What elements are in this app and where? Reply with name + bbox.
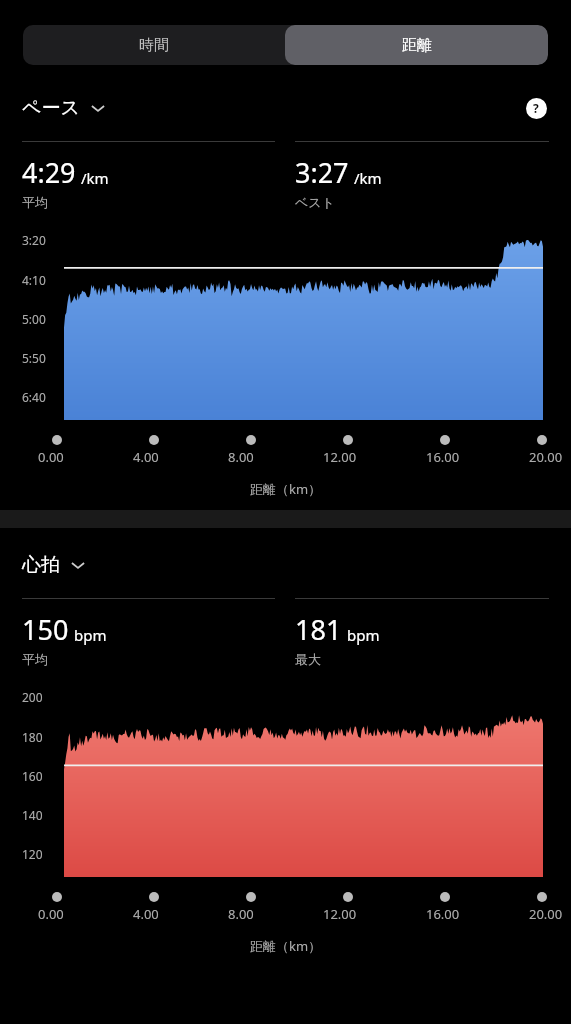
staticText: 20.00 <box>529 905 563 923</box>
button[interactable]: 距離 <box>285 25 548 65</box>
staticText: 12.00 <box>323 448 357 466</box>
staticText: 距離 <box>402 36 432 55</box>
staticText: 3:20 <box>22 232 46 248</box>
staticText: 4:10 <box>22 272 46 288</box>
staticText: ? <box>533 100 539 116</box>
staticText: 平均 <box>22 651 48 667</box>
staticText: /km <box>354 168 382 188</box>
staticText: 160 <box>22 768 43 784</box>
staticText: 16.00 <box>426 448 460 466</box>
staticText: 心拍 <box>22 553 60 577</box>
staticText: 8.00 <box>228 905 254 923</box>
staticText: 120 <box>22 846 43 862</box>
button[interactable]: 時間 <box>23 25 285 65</box>
staticText: 200 <box>22 689 43 705</box>
staticText: 5:50 <box>22 350 46 366</box>
staticText: 4.00 <box>133 448 159 466</box>
staticText: bpm <box>347 625 380 645</box>
staticText: 最大 <box>295 651 321 667</box>
staticText: ベスト <box>295 194 335 210</box>
staticText: 3:27 <box>295 154 349 191</box>
staticText: 140 <box>22 807 43 823</box>
staticText: 4.00 <box>133 905 159 923</box>
staticText: 距離（km） <box>250 937 322 955</box>
staticText: 4:29 <box>22 154 76 191</box>
button[interactable]: 心拍 <box>22 553 86 577</box>
staticText: 180 <box>22 729 43 745</box>
staticText: 150 <box>22 611 69 648</box>
staticText: bpm <box>74 625 107 645</box>
staticText: 8.00 <box>228 448 254 466</box>
staticText: 16.00 <box>426 905 460 923</box>
staticText: 距離（km） <box>250 480 322 498</box>
staticText: 5:00 <box>22 311 46 327</box>
staticText: 0.00 <box>38 448 64 466</box>
staticText: 平均 <box>22 194 48 210</box>
button[interactable]: ペース <box>22 96 106 120</box>
staticText: 6:40 <box>22 389 46 405</box>
button[interactable]: Help <box>525 97 547 119</box>
staticText: ペース <box>22 96 80 120</box>
staticText: 20.00 <box>529 448 563 466</box>
staticText: 時間 <box>139 36 169 55</box>
staticText: 0.00 <box>38 905 64 923</box>
staticText: 12.00 <box>323 905 357 923</box>
staticText: 181 <box>295 611 342 648</box>
staticText: /km <box>81 168 109 188</box>
